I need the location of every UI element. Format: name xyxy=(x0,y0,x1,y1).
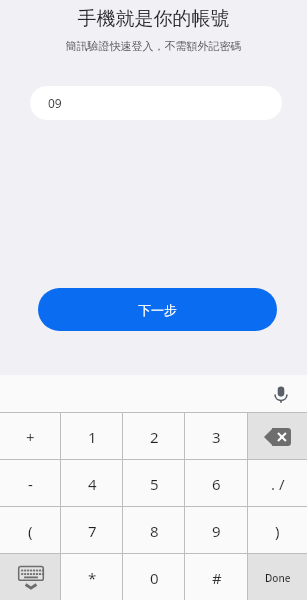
staticText: 6 xyxy=(212,474,221,494)
staticText: 4 xyxy=(88,474,97,494)
staticText: 手機就是你的帳號 xyxy=(0,7,307,31)
button[interactable]: 9 xyxy=(185,507,248,554)
staticText: 3 xyxy=(212,427,221,447)
staticText: ( xyxy=(28,521,33,541)
button[interactable]: Done xyxy=(248,554,307,600)
button[interactable]: 下一步 xyxy=(38,288,277,331)
button[interactable]: Hide keyboard xyxy=(0,554,61,600)
staticText: * xyxy=(88,568,97,588)
button[interactable]: Backspace xyxy=(248,413,307,460)
button[interactable]: ) xyxy=(248,507,307,554)
button[interactable]: 0 xyxy=(123,554,185,600)
staticText: 2 xyxy=(150,427,159,447)
staticText: + xyxy=(26,427,35,447)
staticText: 下一步 xyxy=(138,302,177,318)
staticText: 0 xyxy=(150,568,159,588)
staticText: ) xyxy=(275,521,280,541)
staticText: 9 xyxy=(212,521,221,541)
button[interactable]: . / xyxy=(248,460,307,507)
staticText: 5 xyxy=(150,474,159,494)
button[interactable]: ( xyxy=(0,507,61,554)
button[interactable]: 5 xyxy=(123,460,185,507)
button[interactable]: 6 xyxy=(185,460,248,507)
button[interactable]: # xyxy=(185,554,248,600)
button[interactable]: 09 xyxy=(30,86,282,120)
button[interactable]: 4 xyxy=(61,460,123,507)
button[interactable]: 3 xyxy=(185,413,248,460)
button[interactable]: Voice input xyxy=(266,379,296,409)
button[interactable]: 1 xyxy=(61,413,123,460)
staticText: . / xyxy=(271,474,285,494)
button[interactable]: 8 xyxy=(123,507,185,554)
staticText: 8 xyxy=(150,521,159,541)
staticText: 7 xyxy=(88,521,97,541)
staticText: 1 xyxy=(88,427,97,447)
staticText: - xyxy=(28,474,33,494)
staticText: 簡訊驗證快速登入，不需額外記密碼 xyxy=(0,39,307,53)
button[interactable]: 7 xyxy=(61,507,123,554)
staticText: Done xyxy=(265,571,291,585)
button[interactable]: - xyxy=(0,460,61,507)
staticText: # xyxy=(212,568,222,588)
button[interactable]: * xyxy=(61,554,123,600)
button[interactable]: 2 xyxy=(123,413,185,460)
staticText: 09 xyxy=(48,95,62,111)
button[interactable]: + xyxy=(0,413,61,460)
